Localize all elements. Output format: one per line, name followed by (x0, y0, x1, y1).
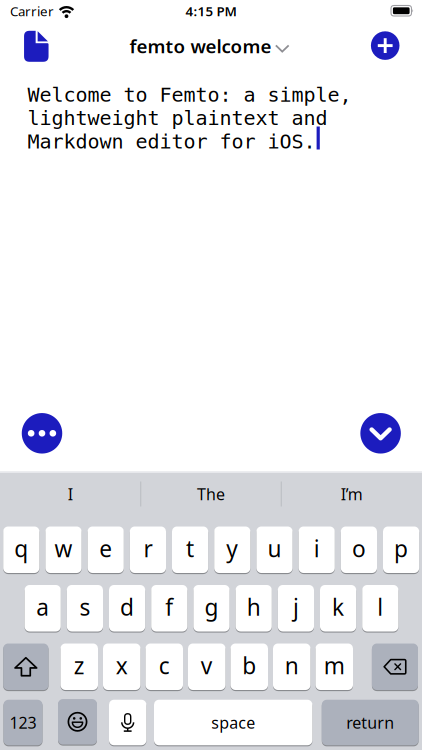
staticText: r (143, 533, 152, 563)
button[interactable]: Emoji (58, 699, 97, 744)
button[interactable]: v (188, 643, 225, 690)
button[interactable]: k (320, 585, 356, 631)
staticText: q (14, 533, 28, 563)
staticText: The (197, 483, 225, 505)
button[interactable]: s (67, 585, 103, 631)
staticText: u (267, 533, 281, 563)
button[interactable]: j (278, 585, 314, 631)
staticText: w (54, 533, 72, 563)
staticText: space (211, 712, 255, 733)
button[interactable]: p (383, 526, 419, 573)
button[interactable]: return (322, 700, 419, 745)
button[interactable]: Delete (372, 643, 418, 690)
staticText: o (352, 533, 366, 563)
button[interactable]: n (273, 643, 310, 690)
button[interactable]: l (362, 585, 398, 631)
staticText: I (68, 483, 73, 505)
staticText: g (204, 592, 218, 622)
button[interactable]: New document (371, 31, 399, 60)
button[interactable]: d (109, 585, 145, 631)
button[interactable]: o (341, 526, 377, 573)
button[interactable]: More actions (22, 413, 62, 454)
staticText: n (285, 650, 299, 680)
staticText: d (120, 592, 134, 622)
button[interactable]: f (151, 585, 187, 631)
staticText: e (99, 533, 112, 563)
button[interactable]: h (236, 585, 272, 631)
button[interactable]: Dismiss keyboard (360, 413, 401, 454)
button[interactable]: i (299, 526, 335, 573)
button[interactable]: g (193, 585, 230, 631)
button[interactable]: q (3, 526, 39, 573)
staticText: k (332, 592, 344, 622)
button[interactable]: e (88, 526, 124, 573)
button[interactable]: I (5, 474, 135, 514)
button[interactable]: m (315, 643, 353, 690)
staticText: 4:15 PM (185, 2, 236, 20)
staticText: 123 (9, 712, 36, 733)
staticText: I’m (341, 483, 363, 505)
button[interactable]: u (256, 526, 293, 573)
button[interactable]: r (130, 526, 166, 573)
button[interactable]: I’m (287, 474, 417, 514)
button[interactable]: a (25, 585, 61, 631)
staticText: v (201, 650, 213, 680)
button[interactable]: x (103, 643, 140, 690)
button[interactable]: 123 (3, 700, 42, 745)
staticText: c (159, 650, 170, 680)
staticText: j (293, 592, 299, 622)
button[interactable]: b (230, 643, 268, 690)
button[interactable]: Shift (3, 643, 48, 690)
staticText: b (242, 650, 256, 680)
button[interactable]: space (154, 700, 312, 745)
button[interactable]: w (45, 526, 82, 573)
staticText: return (346, 712, 394, 733)
staticText: Welcome to Femto: a simple, lightweight … (27, 83, 351, 153)
staticText: h (247, 592, 261, 622)
staticText: Carrier (10, 2, 54, 20)
staticText: i (314, 533, 320, 563)
staticText: t (186, 533, 194, 563)
staticText: x (116, 650, 128, 680)
staticText: p (394, 533, 408, 563)
staticText: z (74, 650, 85, 680)
button[interactable]: t (172, 526, 208, 573)
staticText: l (377, 592, 383, 622)
staticText: femto welcome (129, 34, 271, 58)
button[interactable]: c (145, 643, 183, 690)
staticText: y (226, 533, 238, 563)
staticText: m (324, 650, 345, 680)
staticText: a (36, 592, 49, 622)
button[interactable]: y (214, 526, 250, 573)
staticText: f (165, 592, 173, 622)
button[interactable]: femto welcome (129, 34, 289, 58)
button[interactable]: The (146, 474, 276, 514)
button[interactable]: Dictate (109, 700, 146, 745)
staticText: s (79, 592, 90, 622)
button[interactable]: Documents (24, 31, 48, 62)
button[interactable]: z (60, 643, 98, 690)
